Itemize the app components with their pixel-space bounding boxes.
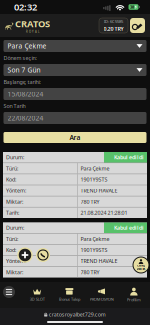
staticText: 3D SLOT [30,297,45,302]
staticText: Kod: [6,246,16,253]
button[interactable]: Menü [0,279,21,310]
button[interactable]: Ara [3,132,146,143]
button[interactable]: PROMOSYON [85,282,118,307]
staticText: Durum: [6,224,24,231]
staticText: DESTEK [136,267,145,271]
staticText: CRATOS [15,17,50,30]
staticText: Yöntem: [6,187,26,194]
button[interactable]: Profilim [118,282,150,307]
staticText: Para Çekme [7,42,46,50]
staticText: ID: 6C5585 [104,19,123,24]
staticText: Kod: [6,176,16,183]
button[interactable]: 3D SLOT [21,282,53,307]
staticText: TREND HAVALE [80,187,117,194]
staticText: Başlangıç tarihi: [3,78,40,86]
staticText: Bonus Talep [59,297,80,302]
staticText: Para Çekme [80,235,109,242]
button[interactable]: Para Yatır [130,18,145,33]
staticText: Kabul edildi [114,224,144,231]
staticText: Son Tarih [3,102,25,110]
staticText: Para Çekme [80,165,109,172]
staticText: Profilim [127,297,141,302]
staticText: Miktar: [6,198,23,205]
staticText: 02:32 [14,1,37,13]
button[interactable]: Para Çekme [3,40,146,52]
button[interactable]: Son 7 Gün [3,64,146,76]
staticText: 780 TRY [80,198,99,205]
staticText: Türü: [6,235,18,242]
staticText: Miktar: [6,269,23,276]
staticText: 780 TRY [80,269,99,276]
staticText: R O Y A L [26,30,39,33]
button[interactable]: cratosroyalbet729.com [0,308,150,321]
staticText: Kabul edildi [114,154,144,161]
button[interactable]: Hızlı Para Yatır [18,248,32,262]
staticText: 0.20 TRY [103,25,123,32]
staticText: Son 7 Gün [7,66,40,74]
staticText: cratosroyalbet729.com [49,311,106,318]
staticText: Dönem seçin: [3,54,36,62]
button[interactable]: Canlı Destek [133,257,149,273]
staticText: Ara [69,133,80,142]
staticText: 22/08/2024 [7,114,43,122]
staticText: Tarih: [6,209,19,216]
staticText: Durum: [6,154,24,161]
button[interactable]: 22/08/2024 [3,112,146,124]
staticText: 1901Y9STS [80,176,107,183]
staticText: 38 [130,4,134,10]
button[interactable]: ID: 6C5585 [99,18,128,33]
staticText: 1901Y9STS [80,246,107,253]
staticText: TREND HAVALE [80,257,117,265]
button[interactable]: Bonus Talep [53,282,85,307]
staticText: PROMOSYON [90,297,114,302]
button[interactable]: WhatsApp [36,248,50,262]
staticText: Yöntem: [6,257,26,265]
staticText: Türü: [6,165,18,172]
staticText: 21.08.2024 21:28:01 [80,209,127,216]
staticText: CANLI [137,264,145,267]
staticText: 15/08/2024 [7,90,43,98]
button[interactable]: 15/08/2024 [3,88,146,100]
